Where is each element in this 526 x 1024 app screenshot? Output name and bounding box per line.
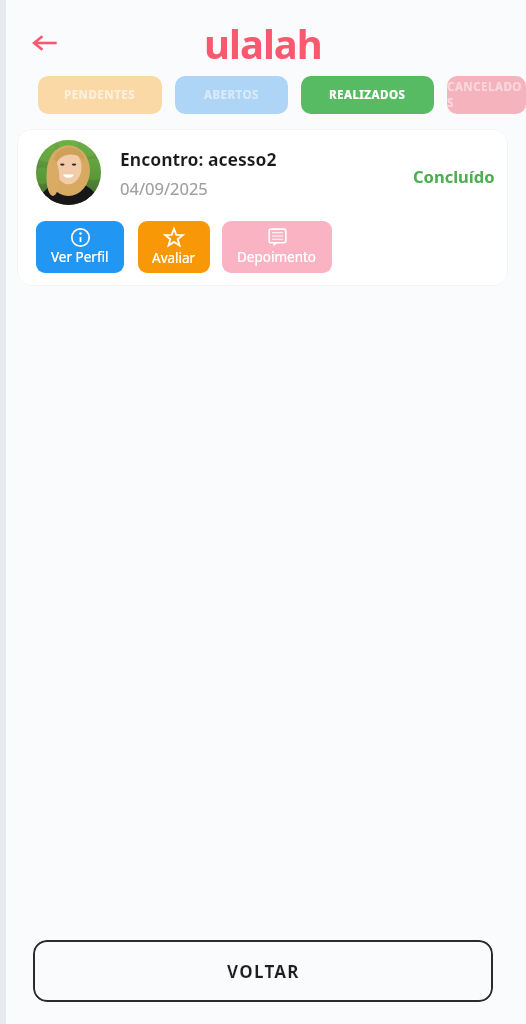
- staticText: Ver Perfil: [51, 248, 109, 266]
- button[interactable]: VOLTAR: [33, 940, 493, 1002]
- button[interactable]: ABERTOS: [175, 76, 288, 114]
- staticText: ulalah: [204, 16, 322, 70]
- staticText: Concluído: [413, 165, 495, 187]
- button[interactable]: Back: [28, 26, 62, 60]
- button[interactable]: Depoimento: [222, 221, 332, 273]
- staticText: PENDENTES: [64, 87, 136, 103]
- button[interactable]: PENDENTES: [38, 76, 162, 114]
- button[interactable]: Ver Perfil: [36, 221, 124, 273]
- staticText: Avaliar: [152, 249, 196, 267]
- button[interactable]: CANCELADOS: [447, 76, 526, 114]
- staticText: 04/09/2025: [120, 177, 208, 199]
- staticText: VOLTAR: [227, 960, 300, 983]
- staticText: REALIZADOS: [329, 87, 406, 103]
- staticText: Depoimento: [237, 248, 317, 266]
- button[interactable]: Avaliar: [138, 221, 210, 273]
- staticText: ABERTOS: [204, 87, 259, 103]
- staticText: Encontro: acesso2: [120, 147, 277, 171]
- staticText: CANCELADOS: [447, 79, 526, 111]
- button[interactable]: Encontro: acesso2: [17, 129, 508, 286]
- button[interactable]: REALIZADOS: [301, 76, 434, 114]
